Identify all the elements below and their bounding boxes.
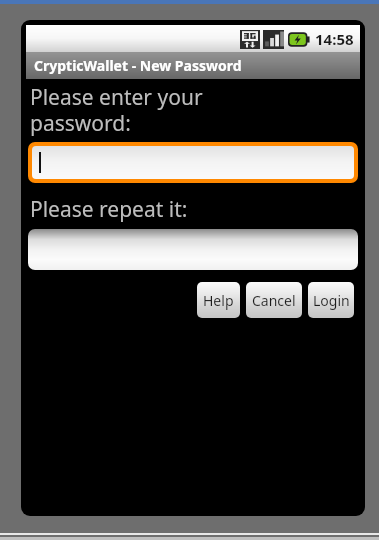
staticText: 14:58	[315, 29, 354, 49]
button[interactable]	[28, 142, 358, 183]
staticText: Please enter your password:	[30, 83, 203, 138]
staticText: CrypticWallet - New Password	[34, 56, 242, 75]
button[interactable]: Help	[197, 282, 240, 318]
staticText: Please repeat it:	[30, 195, 188, 224]
staticText: Help	[203, 291, 234, 310]
staticText: Cancel	[252, 291, 296, 310]
button[interactable]: Cancel	[246, 282, 302, 318]
button[interactable]: Login	[308, 282, 354, 318]
staticText: Login	[313, 291, 350, 310]
button[interactable]	[28, 229, 358, 270]
